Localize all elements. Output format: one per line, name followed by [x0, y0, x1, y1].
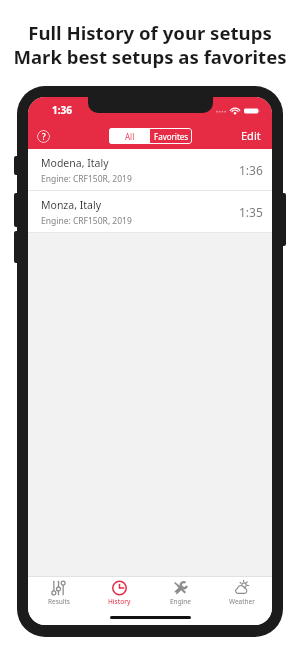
button[interactable]: Modena, Italy [28, 149, 272, 191]
staticText: Full History of your setups [28, 20, 272, 45]
button[interactable]: Weather [211, 581, 272, 606]
staticText: Modena, Italy [41, 156, 109, 170]
button[interactable]: All [109, 128, 150, 144]
button[interactable]: Monza, Italy [28, 191, 272, 233]
staticText: Edit [241, 128, 261, 143]
staticText: Engine [170, 597, 191, 606]
staticText: Results [48, 597, 70, 606]
staticText: Engine: CRF150R, 2019 [41, 173, 132, 185]
staticText: ? [42, 131, 46, 142]
staticText: Weather [229, 597, 255, 606]
staticText: History [108, 597, 131, 606]
staticText: 1:35 [239, 204, 263, 220]
staticText: Favorites [154, 131, 189, 142]
staticText: Mark best setups as favorites [13, 44, 287, 69]
button[interactable]: Edit [230, 124, 272, 147]
button[interactable]: Favorites [150, 128, 192, 144]
staticText: All [125, 131, 135, 142]
staticText: 1:36 [52, 103, 72, 117]
button[interactable]: Results [28, 581, 89, 606]
staticText: 1:36 [239, 162, 263, 178]
staticText: Engine: CRF150R, 2019 [41, 215, 132, 227]
staticText: Monza, Italy [41, 198, 102, 212]
button[interactable]: Engine [150, 581, 211, 606]
button[interactable]: Help [30, 123, 56, 149]
button[interactable]: History [89, 581, 150, 606]
